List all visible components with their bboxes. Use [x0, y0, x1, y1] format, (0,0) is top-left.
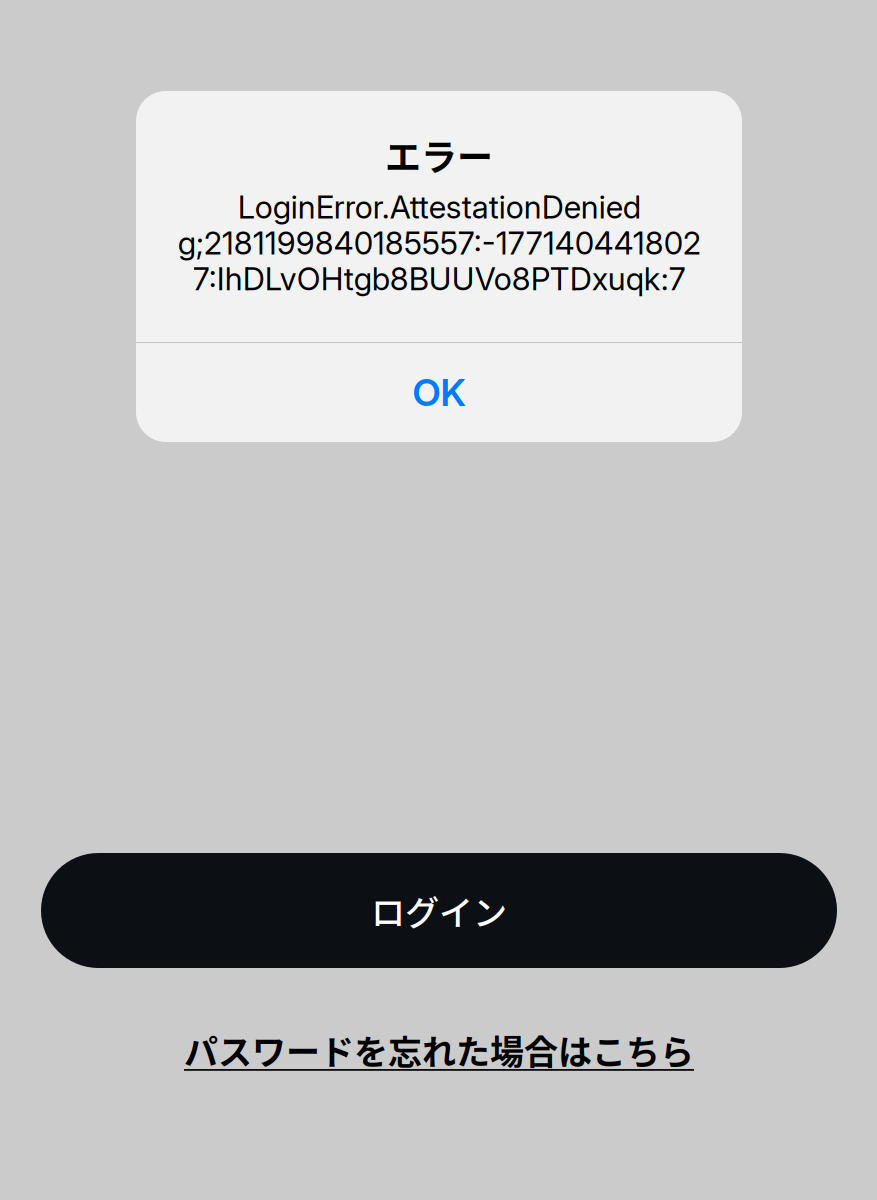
- staticText: パスワードを忘れた場合はこちら: [184, 1025, 694, 1075]
- button[interactable]: ログイン: [41, 853, 837, 968]
- staticText: LoginError.AttestationDenied g;218119984…: [177, 188, 700, 298]
- button[interactable]: OK: [136, 343, 742, 442]
- staticText: OK: [412, 370, 465, 415]
- button[interactable]: パスワードを忘れた場合はこちら: [159, 1020, 719, 1080]
- staticText: ログイン: [371, 886, 507, 935]
- staticText: エラー: [385, 129, 493, 181]
